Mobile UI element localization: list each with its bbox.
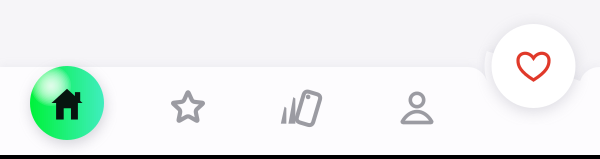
button[interactable]: Cards	[267, 73, 337, 143]
button[interactable]: Favourites	[491, 24, 575, 108]
button[interactable]: Favourites tab	[153, 73, 223, 143]
button[interactable]: Home	[30, 66, 104, 140]
button[interactable]: Profile	[382, 73, 452, 143]
